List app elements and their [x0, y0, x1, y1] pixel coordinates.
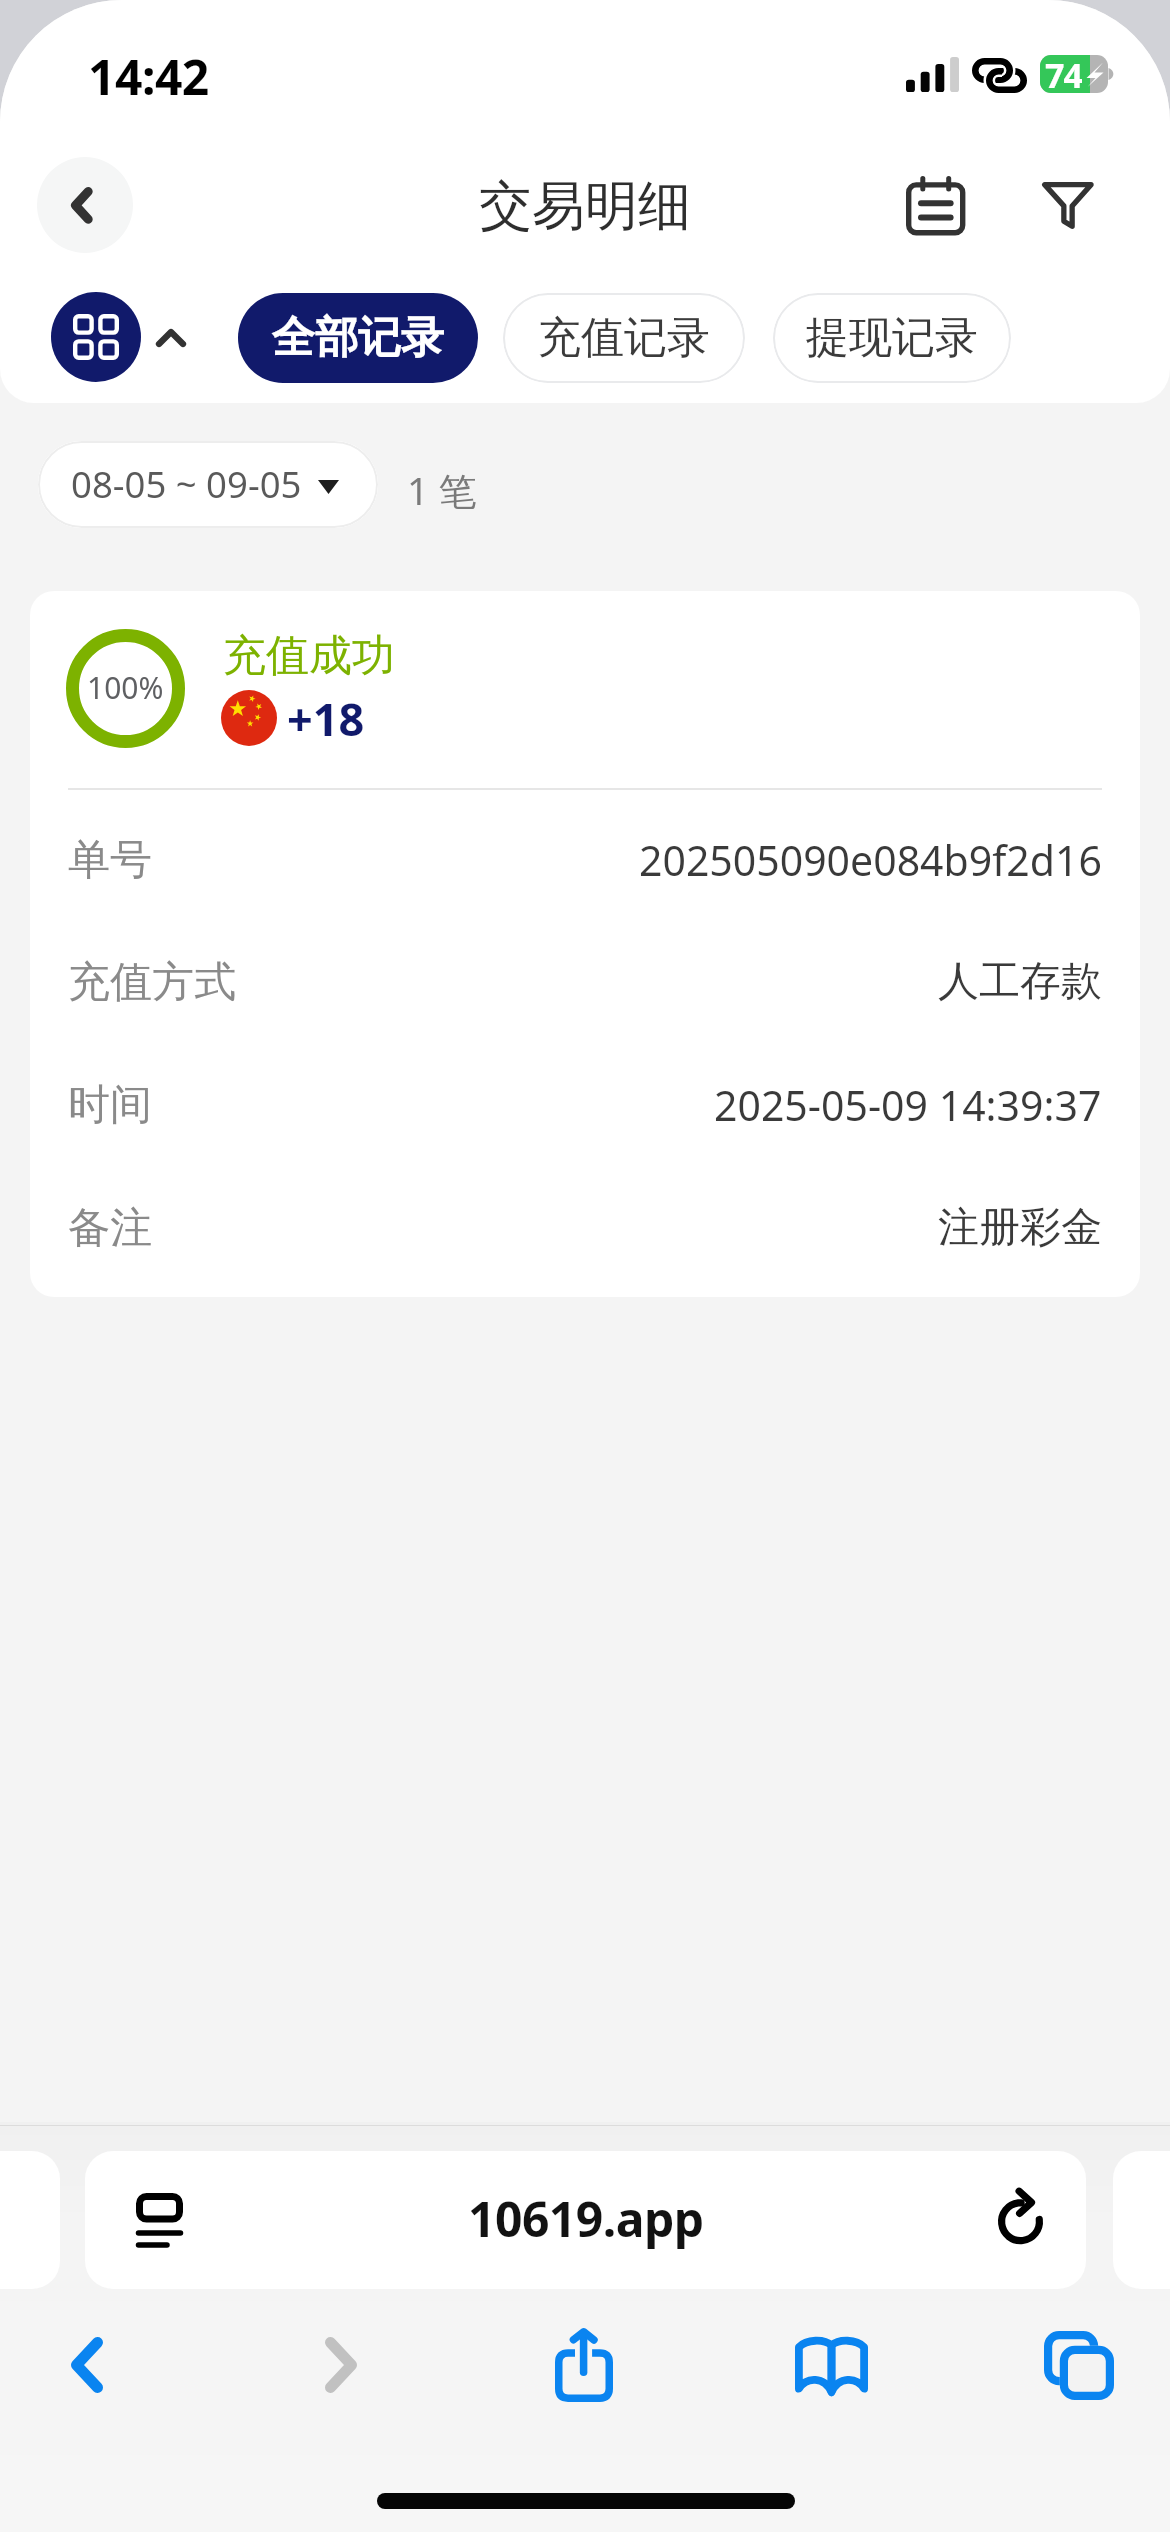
- button[interactable]: Tabs: [1024, 2310, 1134, 2420]
- button[interactable]: Filter: [1020, 157, 1116, 253]
- button[interactable]: Bookmarks: [776, 2310, 886, 2420]
- staticText: 14:42: [88, 44, 209, 109]
- staticText: +18: [287, 688, 365, 749]
- staticText: 74: [1045, 52, 1082, 90]
- button[interactable]: Collapse: [146, 313, 196, 363]
- staticText: 交易明细: [479, 173, 691, 240]
- staticText: 全部记录: [272, 311, 444, 365]
- button[interactable]: Share: [529, 2310, 639, 2420]
- staticText: 单号: [68, 834, 152, 887]
- staticText: 100%: [87, 667, 164, 708]
- button[interactable]: 充值记录: [503, 293, 745, 383]
- button[interactable]: Forward: [286, 2310, 396, 2420]
- button[interactable]: Page settings: [85, 2151, 1086, 2289]
- button[interactable]: Records: [888, 158, 984, 254]
- button[interactable]: Back: [37, 157, 133, 253]
- button[interactable]: Back: [32, 2310, 142, 2420]
- staticText: 2025-05-09 14:39:37: [714, 1077, 1102, 1133]
- button[interactable]: 全部记录: [238, 293, 478, 383]
- staticText: 人工存款: [938, 956, 1102, 1008]
- button[interactable]: 08-05 ~ 09-05: [38, 441, 378, 528]
- button[interactable]: Layout: [51, 292, 141, 382]
- staticText: 1 笔: [407, 464, 477, 516]
- staticText: 充值记录: [538, 311, 710, 365]
- staticText: 时间: [68, 1079, 152, 1132]
- other: Page settings: [136, 2193, 184, 2249]
- staticText: 充值成功: [223, 629, 395, 683]
- other: Reload: [998, 2190, 1044, 2246]
- staticText: 08-05 ~ 09-05: [71, 459, 302, 509]
- staticText: 注册彩金: [938, 1202, 1102, 1254]
- staticText: 10619.app: [468, 2186, 704, 2251]
- button[interactable]: 提现记录: [773, 293, 1011, 383]
- staticText: 202505090e084b9f2d16: [639, 832, 1102, 888]
- staticText: 备注: [68, 1202, 152, 1255]
- staticText: 充值方式: [68, 956, 236, 1009]
- staticText: 提现记录: [806, 311, 978, 365]
